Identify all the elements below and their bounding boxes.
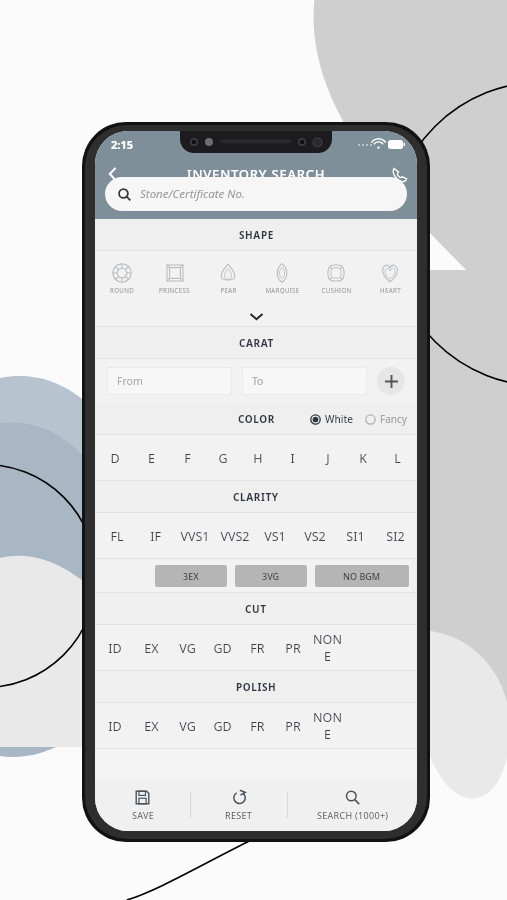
staticText: ID bbox=[108, 718, 122, 735]
button[interactable]: H bbox=[240, 435, 275, 481]
button[interactable]: E bbox=[133, 435, 169, 481]
staticText: MARQUISE bbox=[265, 286, 300, 294]
button[interactable]: From bbox=[107, 367, 232, 395]
staticText: I bbox=[290, 450, 295, 467]
button[interactable]: NONE bbox=[310, 703, 345, 749]
staticText: 3VG bbox=[262, 570, 280, 582]
staticText: IF bbox=[150, 528, 161, 545]
button[interactable]: EX bbox=[133, 703, 169, 749]
button[interactable]: VVS1 bbox=[175, 513, 215, 559]
button[interactable]: MARQUISE bbox=[255, 251, 309, 305]
button[interactable]: G bbox=[205, 435, 240, 481]
staticText: EX bbox=[144, 640, 159, 657]
staticText: RESET bbox=[225, 809, 253, 821]
button[interactable]: J bbox=[310, 435, 345, 481]
button[interactable]: White bbox=[308, 410, 355, 428]
staticText: SI1 bbox=[346, 528, 365, 545]
staticText: F bbox=[184, 450, 191, 467]
staticText: E bbox=[148, 450, 155, 467]
button[interactable]: ID bbox=[97, 625, 133, 671]
button[interactable]: ID bbox=[97, 703, 133, 749]
button[interactable]: GD bbox=[205, 703, 240, 749]
button[interactable]: GD bbox=[205, 625, 240, 671]
button[interactable]: 3EX bbox=[155, 565, 227, 587]
staticText: 2:15 bbox=[111, 137, 133, 152]
button[interactable]: F bbox=[169, 435, 205, 481]
staticText: VG bbox=[179, 640, 196, 657]
staticText: K bbox=[359, 450, 367, 467]
button[interactable]: I bbox=[275, 435, 310, 481]
button[interactable]: SI1 bbox=[335, 513, 375, 559]
button[interactable]: VG bbox=[169, 703, 205, 749]
staticText: SHAPE bbox=[239, 228, 274, 242]
staticText: VG bbox=[179, 718, 196, 735]
button[interactable]: To bbox=[242, 367, 367, 395]
button[interactable]: K bbox=[345, 435, 380, 481]
button[interactable]: ROUND bbox=[95, 251, 148, 305]
button[interactable]: SEARCH (1000+) bbox=[288, 779, 417, 831]
staticText: PR bbox=[285, 640, 301, 657]
button[interactable]: IF bbox=[136, 513, 175, 559]
staticText: PR bbox=[285, 718, 301, 735]
button[interactable]: Add carat range bbox=[377, 367, 405, 395]
button[interactable]: EX bbox=[133, 625, 169, 671]
staticText: To bbox=[252, 374, 264, 388]
staticText: L bbox=[394, 450, 401, 467]
staticText: D bbox=[110, 450, 120, 467]
staticText: J bbox=[326, 450, 330, 467]
staticText: FL bbox=[110, 528, 124, 545]
button[interactable]: Back bbox=[95, 157, 131, 191]
button[interactable]: Fancy bbox=[363, 410, 409, 428]
staticText: HEART bbox=[380, 286, 401, 294]
button[interactable]: SI2 bbox=[375, 513, 415, 559]
button[interactable]: FL bbox=[97, 513, 136, 559]
staticText: CUT bbox=[245, 602, 267, 616]
staticText: SAVE bbox=[132, 809, 154, 821]
staticText: ROUND bbox=[110, 286, 134, 294]
staticText: H bbox=[253, 450, 263, 467]
staticText: PEAR bbox=[220, 286, 237, 294]
button[interactable]: PR bbox=[275, 625, 310, 671]
staticText: 3EX bbox=[183, 570, 199, 582]
button[interactable]: FR bbox=[240, 703, 275, 749]
staticText: Fancy bbox=[380, 412, 407, 426]
button[interactable]: SAVE bbox=[95, 779, 190, 831]
button[interactable]: VS2 bbox=[295, 513, 335, 559]
button[interactable]: Expand shapes bbox=[95, 305, 417, 327]
button[interactable]: PRINCESS bbox=[148, 251, 201, 305]
staticText: CARAT bbox=[239, 336, 274, 350]
button[interactable]: VVS2 bbox=[215, 513, 255, 559]
staticText: VVS1 bbox=[180, 528, 210, 545]
button[interactable]: 3VG bbox=[235, 565, 307, 587]
button[interactable]: PR bbox=[275, 703, 310, 749]
button[interactable]: Call bbox=[381, 157, 417, 191]
button[interactable]: VG bbox=[169, 625, 205, 671]
button[interactable]: RESET bbox=[191, 779, 287, 831]
staticText: POLISH bbox=[236, 680, 277, 694]
button[interactable]: NO BGM bbox=[315, 565, 409, 587]
button[interactable]: PEAR bbox=[201, 251, 255, 305]
button[interactable]: NONE bbox=[310, 625, 345, 671]
staticText: EX bbox=[144, 718, 159, 735]
button[interactable]: Stone/Certificate No. bbox=[105, 177, 407, 211]
button[interactable]: VS1 bbox=[255, 513, 295, 559]
staticText: COLOR bbox=[238, 412, 275, 426]
staticText: G bbox=[218, 450, 228, 467]
staticText: CLARITY bbox=[233, 490, 279, 504]
button[interactable]: HEART bbox=[363, 251, 417, 305]
staticText: CUSHION bbox=[321, 286, 352, 294]
staticText: VVS2 bbox=[220, 528, 250, 545]
staticText: Stone/Certificate No. bbox=[140, 186, 245, 202]
button[interactable]: L bbox=[380, 435, 415, 481]
staticText: White bbox=[325, 412, 353, 426]
button[interactable]: D bbox=[97, 435, 133, 481]
staticText: NO BGM bbox=[343, 570, 381, 582]
staticText: GD bbox=[213, 718, 232, 735]
staticText: GD bbox=[213, 640, 232, 657]
button[interactable]: FR bbox=[240, 625, 275, 671]
staticText: SI2 bbox=[386, 528, 405, 545]
staticText: NONE bbox=[310, 631, 345, 665]
button[interactable]: CUSHION bbox=[309, 251, 363, 305]
staticText: SEARCH (1000+) bbox=[317, 809, 389, 821]
staticText: VS2 bbox=[304, 528, 326, 545]
